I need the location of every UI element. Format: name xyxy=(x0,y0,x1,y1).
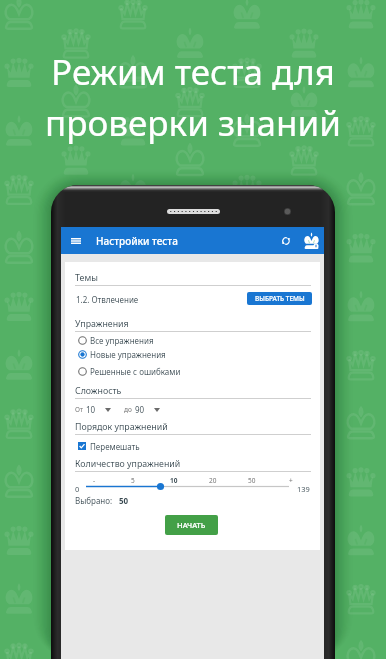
staticText: + xyxy=(289,476,293,485)
staticText: Решенные с ошибками xyxy=(90,366,181,377)
staticText: - xyxy=(93,476,96,485)
staticText: Перемешать xyxy=(90,441,140,452)
staticText: 5 xyxy=(131,476,135,485)
button[interactable]: Решенные с ошибками xyxy=(78,365,311,377)
staticText: до xyxy=(124,405,132,414)
staticText: 0 xyxy=(75,484,80,494)
staticText: 10 xyxy=(86,404,96,415)
staticText: 20 xyxy=(209,476,217,485)
staticText: НАЧАТЬ xyxy=(177,520,206,530)
button[interactable]: НАЧАТЬ xyxy=(165,515,218,535)
button[interactable]: Все упражнения xyxy=(78,334,311,346)
staticText: Упражнения xyxy=(75,318,129,330)
button[interactable]: App logo xyxy=(300,230,322,252)
button[interactable]: Open navigation menu xyxy=(66,231,86,251)
staticText: Количество упражнений xyxy=(75,458,181,470)
staticText: Настройки теста xyxy=(96,234,178,248)
staticText: Режим теста для xyxy=(51,48,335,96)
staticText: 139 xyxy=(297,484,310,494)
button[interactable]: Reset settings xyxy=(276,231,296,251)
staticText: 50 xyxy=(119,495,129,506)
staticText: проверки знаний xyxy=(45,99,341,147)
staticText: Сложность xyxy=(75,385,122,397)
staticText: ВЫБРАТЬ ТЕМЫ xyxy=(255,294,305,303)
button[interactable]: Exercise count slider xyxy=(86,482,289,491)
staticText: От xyxy=(75,405,83,414)
button[interactable]: Перемешать xyxy=(78,440,140,452)
staticText: Все упражнения xyxy=(90,335,154,346)
button[interactable]: Новые упражнения xyxy=(78,348,311,360)
staticText: 10 xyxy=(170,476,178,485)
staticText: 50 xyxy=(248,476,256,485)
button[interactable]: ВЫБРАТЬ ТЕМЫ xyxy=(247,292,312,305)
staticText: 90 xyxy=(135,404,145,415)
staticText: Порядок упражнений xyxy=(75,421,168,433)
staticText: Новые упражнения xyxy=(90,349,166,360)
staticText: Темы xyxy=(75,272,98,284)
staticText: Выбрано: xyxy=(75,495,113,506)
staticText: 1.2. Отвлечение xyxy=(76,294,139,305)
